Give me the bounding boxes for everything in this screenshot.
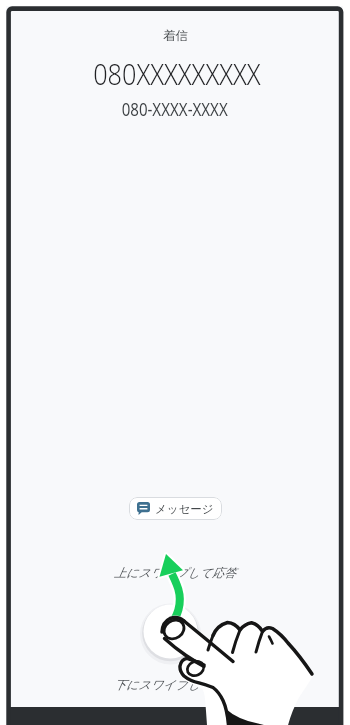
staticText: メッセージ xyxy=(155,502,214,516)
staticText: 上にスワイプして応答 xyxy=(114,565,236,580)
staticText: 下にスワイプして拒否 xyxy=(114,677,236,692)
staticText: 080-XXXX-XXXX xyxy=(122,97,228,121)
staticText: 080XXXXXXXXX xyxy=(93,53,261,93)
button[interactable]: メッセージ xyxy=(129,497,222,520)
button[interactable] xyxy=(144,605,198,659)
staticText: 着信 xyxy=(163,28,188,44)
